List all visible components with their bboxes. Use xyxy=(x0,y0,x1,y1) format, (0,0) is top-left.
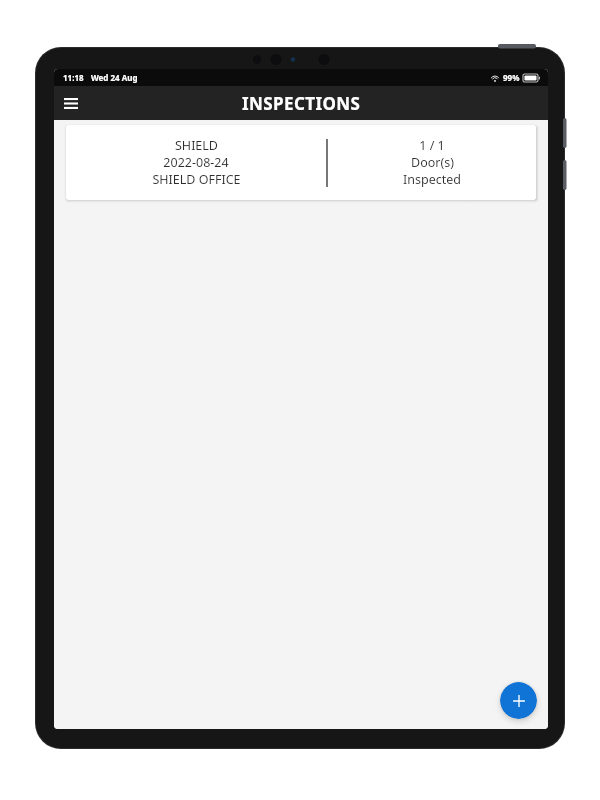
staticText: Wed 24 Aug xyxy=(91,72,138,83)
button[interactable]: Add inspection xyxy=(500,682,537,719)
button[interactable]: Open navigation menu xyxy=(54,86,88,120)
staticText: SHIELD xyxy=(175,137,218,154)
staticText: Door(s) xyxy=(411,154,454,171)
staticText: 99% xyxy=(503,72,520,83)
button[interactable]: SHIELD xyxy=(66,125,536,200)
staticText: SHIELD OFFICE xyxy=(152,171,241,188)
staticText: Inspected xyxy=(403,171,461,188)
staticText: 2022-08-24 xyxy=(163,154,229,171)
staticText: 11:18 xyxy=(63,72,84,83)
staticText: INSPECTIONS xyxy=(242,92,361,115)
staticText: 1 / 1 xyxy=(419,137,445,154)
